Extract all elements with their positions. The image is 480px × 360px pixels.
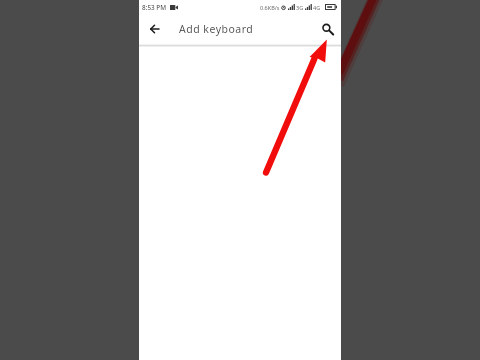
button[interactable]: Back: [143, 14, 166, 44]
staticText: Add keyboard: [179, 22, 254, 36]
staticText: 4G: [313, 4, 321, 11]
staticText: 8:53 PM: [142, 3, 167, 12]
button[interactable]: Search: [315, 14, 339, 44]
staticText: 3G: [296, 4, 304, 11]
staticText: 0.6KB/s: [260, 4, 280, 11]
